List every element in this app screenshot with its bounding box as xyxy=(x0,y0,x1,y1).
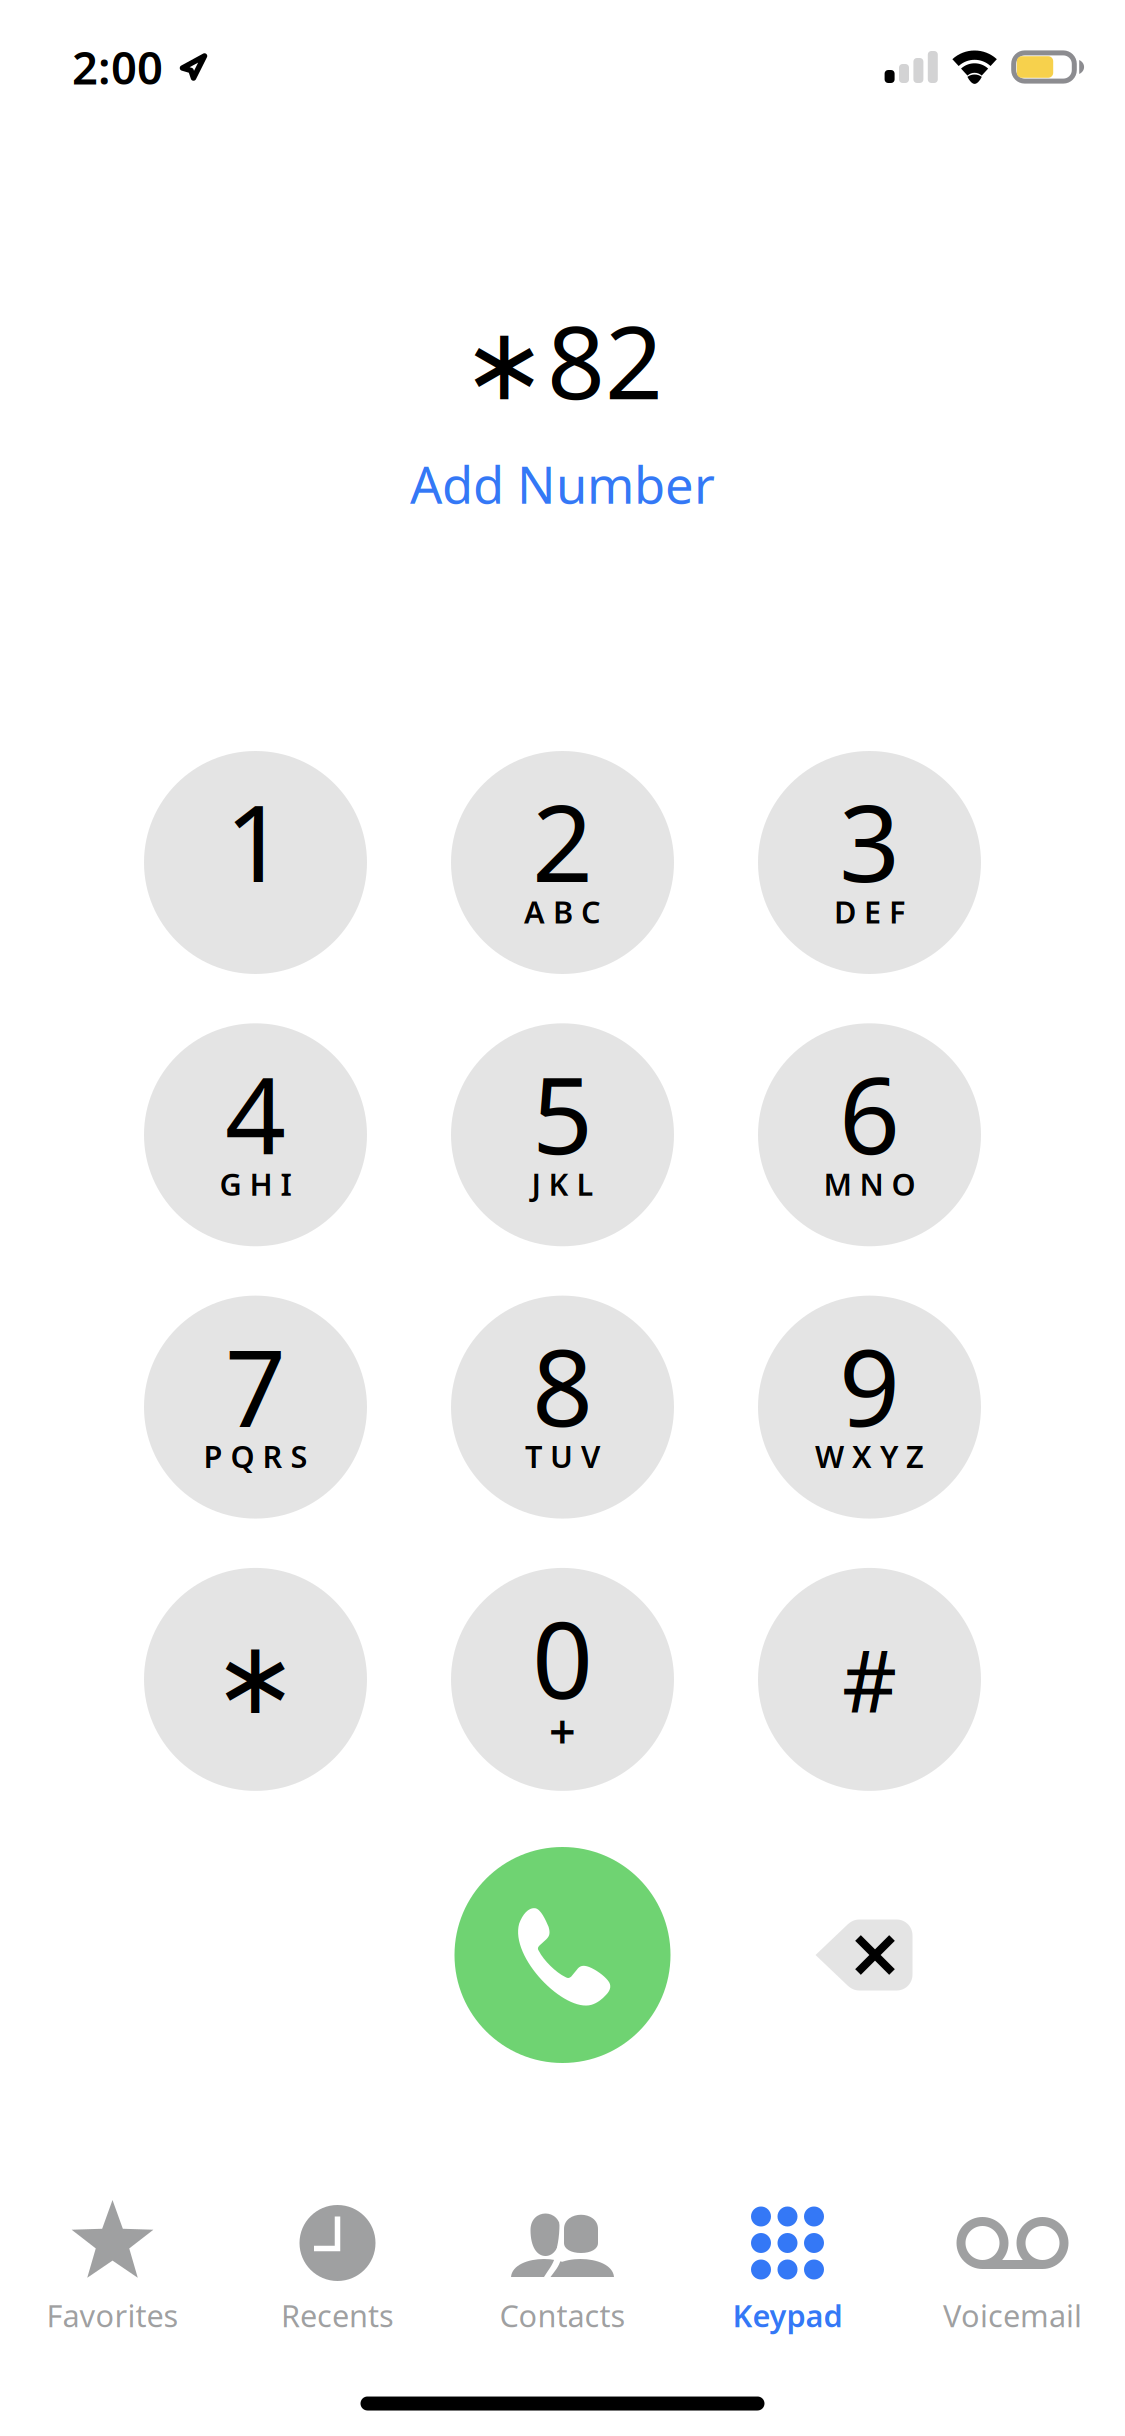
staticText: # xyxy=(842,1623,897,1736)
staticText: Recents xyxy=(281,2295,394,2336)
staticText: A B C xyxy=(524,891,601,932)
staticText: 2:00 xyxy=(72,37,163,97)
staticText: Favorites xyxy=(46,2295,178,2336)
button[interactable]: 1 xyxy=(144,751,367,974)
button[interactable]: Call xyxy=(454,1847,670,2063)
staticText: D E F xyxy=(834,891,905,932)
staticText: 7 xyxy=(225,1314,286,1456)
staticText: G H I xyxy=(219,1163,291,1204)
staticText: 0 xyxy=(532,1587,593,1728)
button[interactable]: Add Number xyxy=(386,440,739,528)
button[interactable]: Recents xyxy=(225,2198,450,2348)
staticText: + xyxy=(549,1699,576,1761)
staticText: 5 xyxy=(532,1042,593,1184)
staticText: 2 xyxy=(532,770,593,911)
staticText: P Q R S xyxy=(203,1436,307,1476)
staticText: Add Number xyxy=(410,450,715,518)
button[interactable]: 2 xyxy=(451,751,674,974)
button[interactable]: 9 xyxy=(758,1296,981,1519)
button[interactable]: Delete xyxy=(815,1919,912,1990)
staticText: 4 xyxy=(225,1042,286,1184)
button[interactable]: Keypad xyxy=(675,2198,900,2348)
button[interactable]: Voicemail xyxy=(900,2198,1125,2348)
button[interactable]: 0 xyxy=(451,1568,674,1791)
button[interactable]: Favorites xyxy=(0,2198,225,2348)
button[interactable]: 3 xyxy=(758,751,981,974)
button[interactable]: Contacts xyxy=(450,2198,675,2348)
staticText: Contacts xyxy=(499,2295,625,2336)
staticText: Voicemail xyxy=(943,2295,1082,2336)
staticText: 6 xyxy=(839,1042,900,1184)
button[interactable]: # xyxy=(758,1568,981,1791)
staticText: T U V xyxy=(525,1436,600,1476)
button[interactable]: 8 xyxy=(451,1296,674,1519)
staticText: Keypad xyxy=(732,2295,842,2336)
button[interactable]: 7 xyxy=(144,1296,367,1519)
staticText: ∗82 xyxy=(462,293,663,427)
staticText: W X Y Z xyxy=(815,1436,924,1476)
staticText: J K L xyxy=(531,1163,593,1204)
button[interactable]: 4 xyxy=(144,1023,367,1246)
button[interactable]: 6 xyxy=(758,1023,981,1246)
staticText: 3 xyxy=(839,770,900,911)
button[interactable]: 5 xyxy=(451,1023,674,1246)
staticText: 8 xyxy=(532,1314,593,1456)
staticText: 1 xyxy=(225,770,286,911)
staticText: ∗ xyxy=(213,1620,298,1735)
button[interactable]: ∗ xyxy=(144,1568,367,1791)
staticText: M N O xyxy=(823,1163,915,1204)
staticText: 9 xyxy=(839,1314,900,1456)
